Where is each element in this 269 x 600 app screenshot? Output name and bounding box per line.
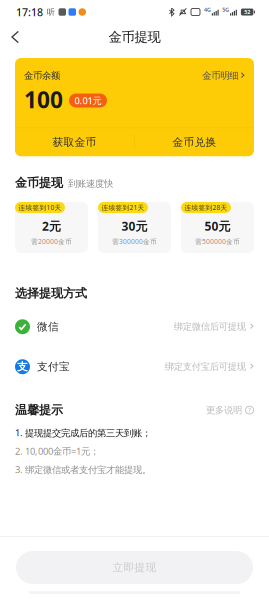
staticText: ? xyxy=(248,406,251,415)
staticText: 100 xyxy=(24,84,63,115)
button[interactable]: 支 xyxy=(15,347,254,387)
staticText: 连续签到21天 xyxy=(101,203,144,212)
staticText: 金币明细 xyxy=(202,70,238,81)
staticText: 需500000金币 xyxy=(195,237,240,246)
staticText: 支付宝 xyxy=(37,360,70,373)
staticText: 5G xyxy=(222,6,229,13)
staticText: 金币提现 xyxy=(108,29,160,45)
staticText: 获取金币 xyxy=(53,136,97,149)
staticText: 连续签到10天 xyxy=(18,203,61,212)
staticText: 支 xyxy=(17,360,28,373)
button[interactable]: 微信 xyxy=(15,307,254,347)
staticText: 金币提现 xyxy=(15,175,63,190)
staticText: 听 xyxy=(47,7,55,17)
staticText: 温馨提示 xyxy=(15,403,63,417)
staticText: 需20000金币 xyxy=(31,237,72,246)
button[interactable]: 获取金币 xyxy=(15,128,134,156)
staticText: 0.01元 xyxy=(74,94,101,107)
button[interactable]: 返回 xyxy=(0,24,31,50)
staticText: 立即提现 xyxy=(112,561,156,574)
button[interactable]: 30元 xyxy=(98,202,171,253)
staticText: 到账速度快 xyxy=(68,178,113,189)
button[interactable]: 金币明细 xyxy=(202,70,245,81)
button[interactable]: 更多说明 xyxy=(206,404,254,416)
staticText: 金币余额 xyxy=(24,70,60,81)
staticText: 1. 提现提交完成后的第三天到账； xyxy=(15,426,151,439)
staticText: 连续签到28天 xyxy=(184,203,227,212)
staticText: 2. 10,000金币=1元； xyxy=(15,445,99,457)
staticText: 2元 xyxy=(42,218,61,234)
staticText: 绑定微信后可提现 xyxy=(174,321,246,332)
staticText: 30元 xyxy=(121,218,147,234)
button[interactable]: 50元 xyxy=(181,202,254,253)
staticText: 17:18 xyxy=(16,5,43,19)
staticText: 需300000金币 xyxy=(112,237,157,246)
staticText: 微信 xyxy=(37,320,59,333)
staticText: 更多说明 xyxy=(206,404,242,416)
staticText: 绑定支付宝后可提现 xyxy=(165,361,246,372)
staticText: 3. 绑定微信或者支付宝才能提现。 xyxy=(15,463,151,476)
button[interactable]: 金币兑换 xyxy=(135,128,254,156)
staticText: 金币兑换 xyxy=(172,136,216,149)
staticText: 4G xyxy=(204,6,211,13)
button[interactable]: 2元 xyxy=(15,202,88,253)
staticText: 50元 xyxy=(204,218,230,234)
staticText: 选择提现方式 xyxy=(15,286,87,301)
button[interactable]: 立即提现 xyxy=(16,551,253,584)
staticText: 52 xyxy=(244,8,250,16)
